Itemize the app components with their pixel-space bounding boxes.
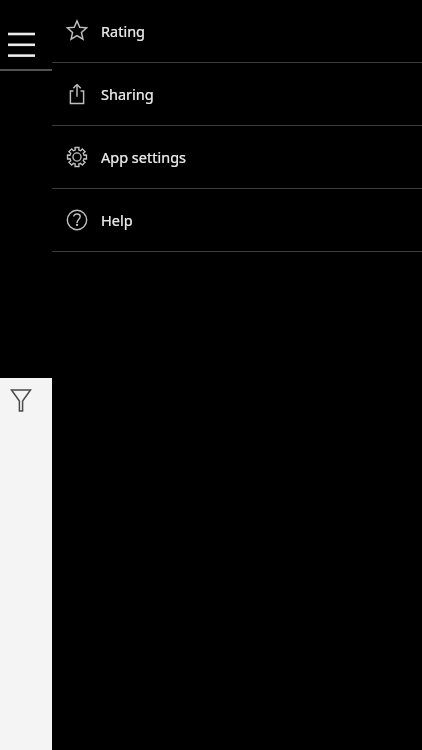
staticText: Rating (101, 21, 146, 41)
button[interactable]: Help (52, 189, 422, 251)
staticText: App settings (101, 147, 187, 167)
button[interactable]: Sharing (52, 63, 422, 125)
button[interactable]: Rating (52, 0, 422, 62)
staticText: Sharing (101, 84, 154, 104)
staticText: Help (101, 210, 133, 230)
button[interactable]: Filter (0, 378, 52, 426)
button[interactable]: App settings (52, 126, 422, 188)
button[interactable]: Open navigation menu (0, 0, 52, 71)
